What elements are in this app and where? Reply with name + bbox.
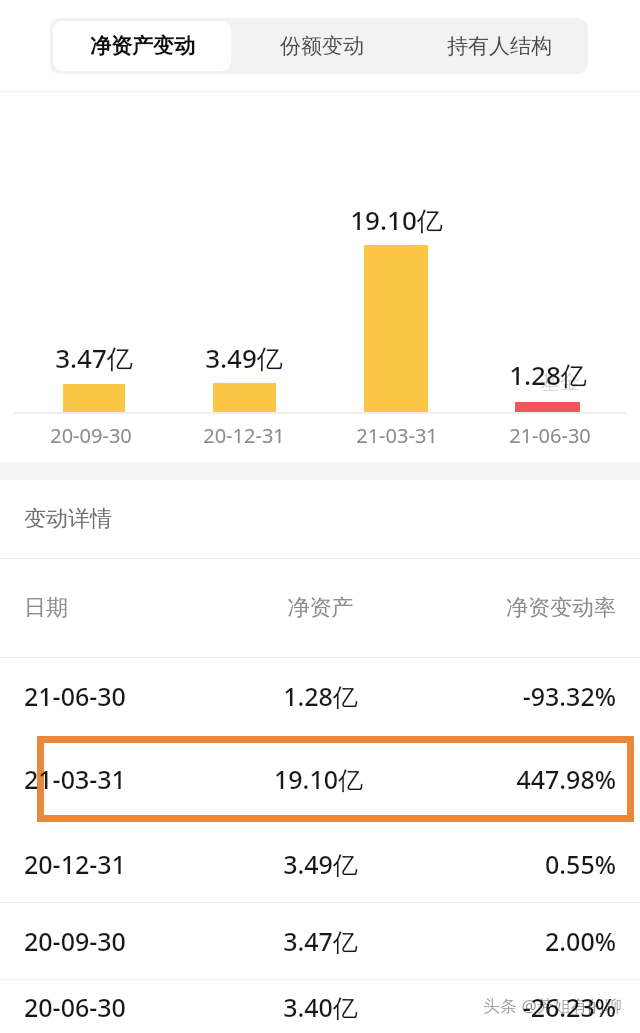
staticText: 净资变动率 [419,594,616,622]
staticText: 3.49亿 [222,847,419,881]
staticText: 3.40亿 [222,990,419,1024]
button[interactable]: 持有人结构 [410,18,588,74]
staticText: 20-06-30 [24,990,222,1024]
staticText: 447.98% [423,762,616,796]
button[interactable]: 20-12-31 [0,826,640,902]
staticText: 20-12-31 [203,422,285,449]
staticText: 20-09-30 [24,924,222,958]
staticText: 变动详情 [24,505,112,533]
staticText: 份额变动 [280,33,364,59]
staticText: 3.47亿 [222,924,419,958]
staticText: 3.49亿 [205,340,283,376]
staticText: 2.00% [419,924,616,958]
staticText: 基金 [540,370,580,395]
staticText: 20-12-31 [24,847,222,881]
staticText: 持有人结构 [447,33,552,59]
staticText: 0.55% [419,847,616,881]
button[interactable]: 份额变动 [234,18,410,74]
staticText: 日期 [24,594,222,622]
staticText: 1.28亿 [222,679,419,713]
staticText: 19.10亿 [350,202,443,238]
staticText: 21-03-31 [356,422,438,449]
staticText: 净资产 [222,594,419,622]
staticText: 头条 @芳姐有的聊 [483,994,622,1017]
staticText: 3.47亿 [55,340,133,376]
button[interactable]: 21-06-30 [0,658,640,734]
staticText: -93.32% [419,679,616,713]
staticText: 1.28亿 [509,357,587,393]
button[interactable]: 净资产变动 [53,21,231,71]
staticText: 19.10亿 [222,762,415,796]
staticText: 净资产变动 [90,33,195,59]
staticText: 21-06-30 [24,679,222,713]
button[interactable]: 20-09-30 [0,903,640,979]
staticText: 21-03-31 [24,762,217,796]
button[interactable]: 21-03-31 [37,736,634,822]
button[interactable]: 20-06-30 [0,980,640,1033]
staticText: 20-09-30 [50,422,132,449]
staticText: -26.23% [419,990,616,1024]
staticText: 21-06-30 [509,422,591,449]
